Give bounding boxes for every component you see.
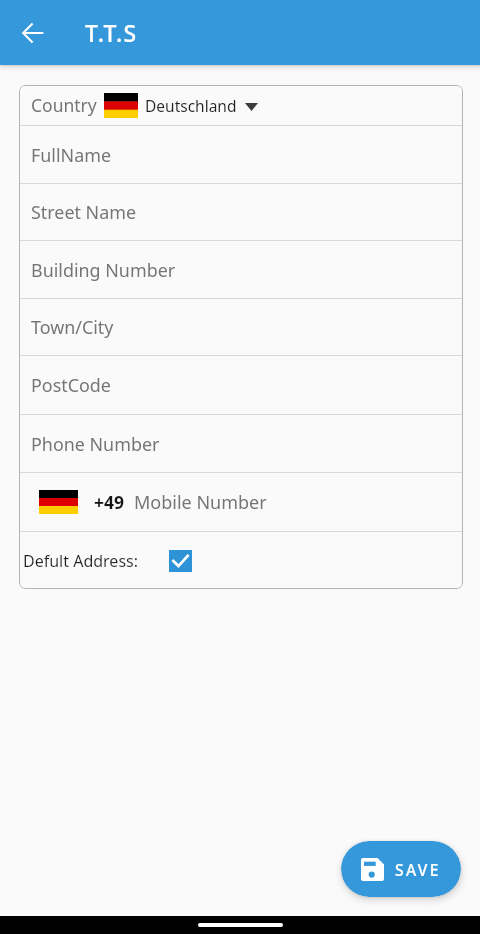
staticText: FullName	[31, 143, 112, 167]
staticText: Building Number	[31, 258, 176, 282]
staticText: Mobile Number	[134, 490, 267, 515]
staticText: Phone Number	[31, 432, 160, 456]
button[interactable]: SAVE	[341, 841, 461, 897]
staticText: Street Name	[31, 200, 137, 224]
button[interactable]: Defult Address:	[19, 532, 463, 589]
staticText: Deutschland	[145, 95, 237, 116]
button[interactable]: Back	[13, 13, 53, 53]
button[interactable]: PostCode	[19, 356, 463, 414]
button[interactable]: Town/City	[19, 299, 463, 355]
staticText: Defult Address:	[23, 550, 138, 572]
staticText: T.T.S	[85, 17, 138, 48]
button[interactable]: FullName	[19, 126, 463, 183]
staticText: Town/City	[31, 315, 114, 339]
staticText: Country	[31, 93, 97, 117]
button[interactable]: +49	[19, 473, 463, 531]
button[interactable]: Default address checkbox	[169, 550, 192, 572]
button[interactable]: Country	[19, 85, 463, 125]
staticText: SAVE	[395, 859, 441, 880]
staticText: +49	[94, 490, 125, 514]
button[interactable]: Building Number	[19, 241, 463, 298]
button[interactable]: Phone Number	[19, 415, 463, 472]
staticText: PostCode	[31, 373, 111, 397]
button[interactable]: Street Name	[19, 184, 463, 240]
